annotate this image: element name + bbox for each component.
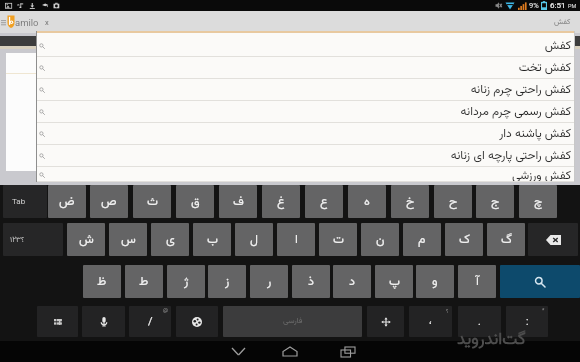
button[interactable]: ف xyxy=(219,185,257,218)
staticText: فارسی xyxy=(283,315,303,328)
button[interactable]: کفش پاشنه دار xyxy=(36,123,575,145)
button[interactable]: غ xyxy=(262,185,300,218)
staticText: ق xyxy=(191,192,200,212)
button[interactable]: پ xyxy=(375,265,413,298)
button[interactable]: ث xyxy=(133,185,171,218)
button[interactable]: mic xyxy=(82,306,125,337)
staticText: کفش رسمی چرم مردانه xyxy=(460,103,571,122)
staticText: ا xyxy=(295,230,298,250)
button[interactable]: ق xyxy=(176,185,214,218)
button[interactable]: آ xyxy=(458,265,496,298)
button[interactable]: search xyxy=(500,265,580,298)
staticText: ه xyxy=(364,192,370,212)
staticText: x xyxy=(45,18,49,27)
button[interactable]: Menu xyxy=(0,11,6,33)
button[interactable]: backspace xyxy=(528,223,578,256)
button[interactable]: ل xyxy=(235,223,273,256)
staticText: ظ xyxy=(97,272,107,292)
staticText: م xyxy=(418,230,426,250)
button[interactable]: ذ xyxy=(292,265,330,298)
button[interactable]: arrows xyxy=(367,306,404,337)
button[interactable]: ع xyxy=(305,185,343,218)
staticText: ، xyxy=(429,314,432,330)
staticText: 6:51 xyxy=(550,1,566,10)
button[interactable]: . xyxy=(458,306,501,337)
button[interactable]: ژ xyxy=(167,265,205,298)
staticText: ص xyxy=(101,192,117,212)
button[interactable]: Home xyxy=(275,341,305,362)
staticText: ل xyxy=(250,230,258,250)
button[interactable]: کفش راحتی چرم زنانه xyxy=(36,79,575,101)
staticText: ع xyxy=(320,192,328,212)
button[interactable]: ه xyxy=(348,185,386,218)
staticText: ج xyxy=(491,192,500,212)
button[interactable]: kb xyxy=(37,306,78,337)
button[interactable]: Hide keyboard xyxy=(222,341,254,362)
button[interactable]: ؟۱۲۳ xyxy=(3,223,63,256)
button[interactable]: ا xyxy=(277,223,315,256)
button[interactable]: س xyxy=(109,223,147,256)
button[interactable]: ض xyxy=(48,185,86,218)
staticText: . xyxy=(478,316,481,328)
button[interactable]: ز xyxy=(208,265,246,298)
staticText: ح xyxy=(449,192,458,212)
button[interactable]: ب xyxy=(193,223,231,256)
staticText: ب xyxy=(207,230,218,250)
button[interactable]: ، xyxy=(409,306,452,337)
button[interactable]: ک xyxy=(445,223,483,256)
button[interactable]: کفش رسمی چرم مردانه xyxy=(36,101,575,123)
button[interactable]: ت xyxy=(319,223,357,256)
button[interactable]: ط xyxy=(125,265,163,298)
staticText: کفش راحتی پارچه ای زنانه xyxy=(450,147,571,166)
staticText: گ xyxy=(501,230,512,250)
button[interactable]: کفش ورزشی xyxy=(36,167,575,182)
button[interactable]: Close tab xyxy=(41,11,53,33)
button[interactable]: خ xyxy=(391,185,429,218)
button[interactable]: Recent apps xyxy=(333,341,363,362)
staticText: س xyxy=(121,230,136,250)
button[interactable]: ص xyxy=(90,185,128,218)
button[interactable]: کفش xyxy=(36,35,575,57)
staticText: و xyxy=(432,272,438,292)
button[interactable]: : xyxy=(506,306,548,337)
staticText: Tab xyxy=(12,197,26,206)
button[interactable]: ر xyxy=(250,265,288,298)
staticText: ر xyxy=(267,272,272,292)
staticText: پ xyxy=(389,272,400,292)
button[interactable]: / xyxy=(129,306,171,337)
staticText: : xyxy=(526,316,529,328)
button[interactable]: د xyxy=(333,265,371,298)
staticText: / xyxy=(148,315,153,328)
button[interactable]: Tab xyxy=(3,185,47,218)
staticText: amilo xyxy=(15,17,39,28)
button[interactable]: ش xyxy=(67,223,105,256)
button[interactable]: globe xyxy=(176,306,218,337)
button[interactable]: م xyxy=(403,223,441,256)
staticText: کفش xyxy=(554,16,571,28)
button[interactable]: ج xyxy=(476,185,514,218)
button[interactable]: کفش تخت xyxy=(36,57,575,79)
button[interactable]: کفش راحتی پارچه ای زنانه xyxy=(36,145,575,167)
button[interactable]: amilo xyxy=(7,11,39,33)
staticText: ک xyxy=(459,230,470,250)
staticText: 9% xyxy=(529,1,539,10)
staticText: چ xyxy=(534,192,543,212)
button[interactable]: ح xyxy=(434,185,472,218)
button[interactable]: ن xyxy=(361,223,399,256)
button[interactable]: گ xyxy=(487,223,525,256)
staticText: ف xyxy=(233,192,244,212)
staticText: خ xyxy=(406,192,415,212)
staticText: کفش پاشنه دار xyxy=(499,125,571,144)
staticText: PM xyxy=(568,3,577,9)
staticText: ط xyxy=(139,272,149,292)
staticText: کفش xyxy=(544,37,571,56)
button[interactable]: ظ xyxy=(83,265,121,298)
staticText: کفش راحتی چرم زنانه xyxy=(470,81,571,100)
button[interactable]: و xyxy=(416,265,454,298)
staticText: ژ xyxy=(184,272,189,292)
button[interactable]: چ xyxy=(519,185,557,218)
staticText: ث xyxy=(147,192,158,212)
button[interactable]: ی xyxy=(151,223,189,256)
staticText: گت‌اندروید xyxy=(457,327,526,354)
